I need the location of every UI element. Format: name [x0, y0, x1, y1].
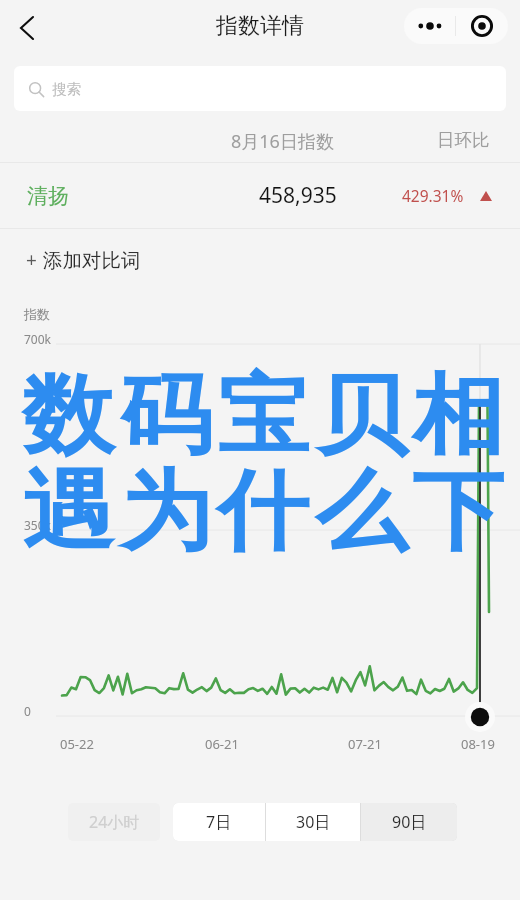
staticText: 指数: [24, 306, 50, 322]
staticText: +: [26, 247, 37, 273]
staticText: 么: [315, 457, 407, 567]
staticText: 458,935: [259, 181, 337, 210]
button[interactable]: More options: [404, 8, 455, 44]
staticText: 日环比: [437, 129, 490, 151]
staticText: 下: [412, 457, 504, 567]
button[interactable]: 90日: [361, 803, 457, 841]
staticText: 08-19: [461, 735, 495, 753]
staticText: 贝: [315, 361, 407, 471]
button[interactable]: 7日: [173, 803, 265, 841]
staticText: 宝: [217, 361, 309, 471]
staticText: 30日: [296, 811, 331, 833]
staticText: 0: [24, 703, 31, 719]
staticText: 24小时: [89, 811, 140, 833]
button[interactable]: 30日: [266, 803, 360, 841]
button[interactable]: +: [0, 229, 520, 291]
button[interactable]: Back: [6, 8, 46, 48]
staticText: 06-21: [205, 735, 239, 753]
staticText: 搜索: [52, 80, 81, 98]
staticText: 07-21: [348, 735, 382, 753]
staticText: 8月16日指数: [231, 129, 334, 154]
staticText: 什: [217, 457, 309, 567]
staticText: 429.31%: [402, 185, 464, 206]
staticText: 指数详情: [216, 12, 304, 40]
staticText: 350k: [24, 517, 52, 533]
staticText: 05-22: [60, 735, 94, 753]
button[interactable]: 搜索: [14, 66, 506, 111]
staticText: 清扬: [27, 183, 69, 209]
staticText: 700k: [24, 331, 52, 347]
staticText: 遇: [22, 457, 114, 567]
button[interactable]: Close mini program: [456, 8, 508, 44]
staticText: 添加对比词: [43, 248, 141, 273]
staticText: 90日: [392, 811, 427, 833]
staticText: 数: [22, 361, 114, 471]
button[interactable]: 清扬: [0, 163, 520, 228]
staticText: 码: [120, 361, 212, 471]
staticText: 相: [412, 361, 504, 471]
staticText: 为: [120, 457, 212, 567]
button[interactable]: 24小时: [68, 803, 160, 841]
staticText: 7日: [206, 811, 232, 833]
